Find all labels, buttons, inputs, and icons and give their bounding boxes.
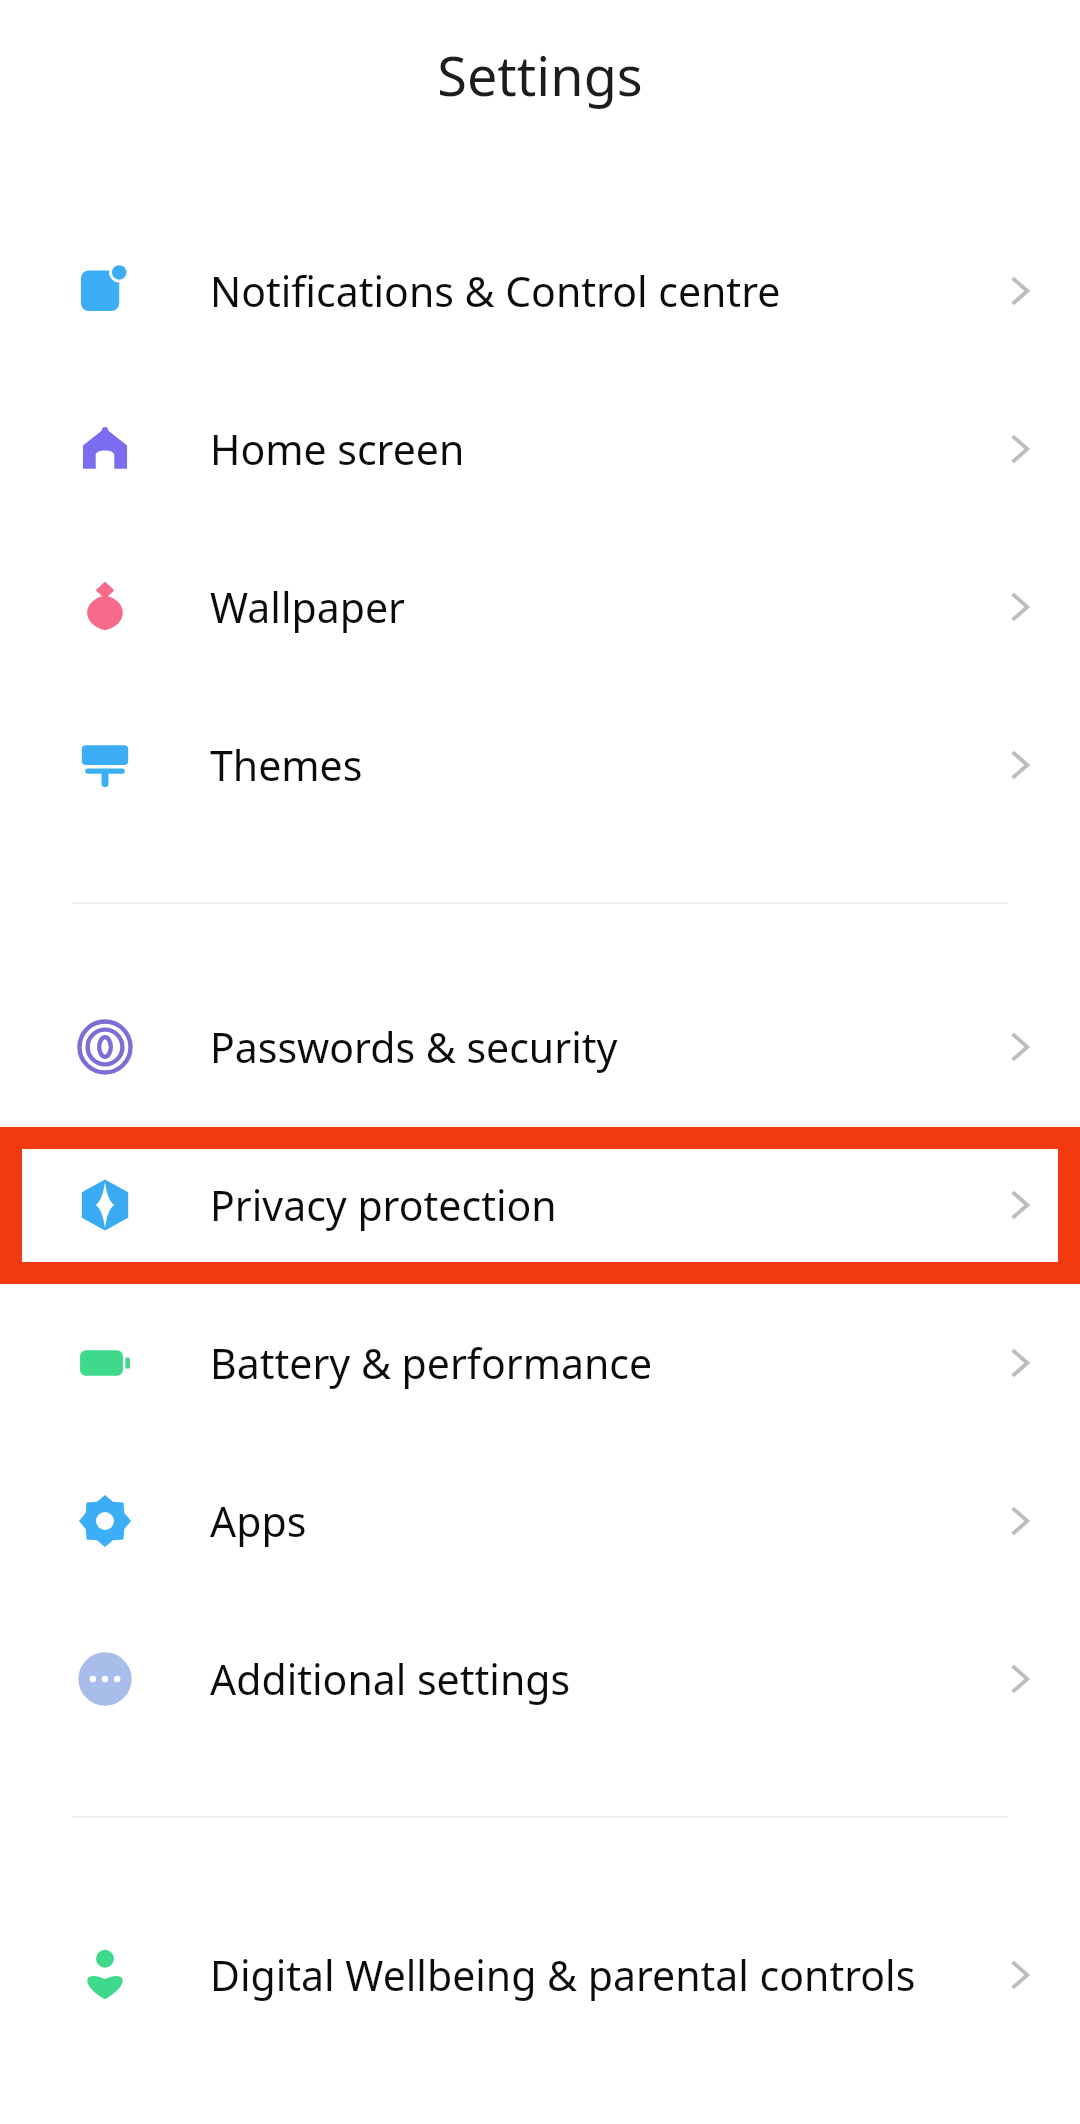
- button[interactable]: Home screen: [0, 370, 1080, 528]
- button[interactable]: Privacy protection: [0, 1126, 1080, 1284]
- staticText: Battery & performance: [210, 1335, 960, 1391]
- other: Highlight: [0, 1127, 1080, 1284]
- staticText: Additional settings: [210, 1651, 960, 1707]
- button[interactable]: Wallpaper: [0, 528, 1080, 686]
- staticText: Notifications & Control centre: [210, 263, 960, 319]
- button[interactable]: Additional settings: [0, 1600, 1080, 1758]
- button[interactable]: Notifications & Control centre: [0, 212, 1080, 370]
- button[interactable]: Battery & performance: [0, 1284, 1080, 1442]
- button[interactable]: Digital Wellbeing & parental controls: [0, 1880, 1080, 2070]
- staticText: Digital Wellbeing & parental controls: [210, 1947, 950, 2003]
- button[interactable]: Passwords & security: [0, 968, 1080, 1126]
- staticText: Settings: [437, 38, 643, 112]
- staticText: Privacy protection: [210, 1177, 960, 1233]
- staticText: Apps: [210, 1493, 960, 1549]
- button[interactable]: Themes: [0, 686, 1080, 844]
- staticText: Wallpaper: [210, 579, 960, 635]
- staticText: Passwords & security: [210, 1019, 960, 1075]
- staticText: Themes: [210, 737, 960, 793]
- staticText: Home screen: [210, 421, 960, 477]
- button[interactable]: Apps: [0, 1442, 1080, 1600]
